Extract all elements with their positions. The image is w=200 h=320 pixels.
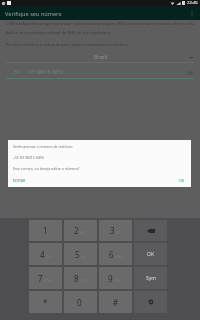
staticText: 55 [14,69,20,76]
staticText: EDITAR [13,178,26,183]
staticText: OK [179,178,185,183]
button[interactable]: Keyboard settings [134,291,167,313]
button[interactable]: 3 [99,220,132,241]
button[interactable]: Sym [134,267,167,289]
staticText: 1 [43,225,48,236]
staticText: +55 83 98415-6856 [13,155,44,160]
staticText: 7 [38,273,43,284]
button[interactable]: 8 [64,267,97,289]
staticText: MNO [115,255,123,259]
staticText: Verificaremos o número de telefone: [13,144,73,149]
staticText: 5 [75,249,80,260]
button[interactable]: 0 [64,291,97,313]
staticText: 9 [108,273,113,284]
button[interactable]: 5 [64,243,97,265]
button[interactable]: Backspace [134,220,167,241]
staticText: 0 [77,297,82,308]
staticText: 3 [110,225,115,236]
button[interactable]: Verifique seu número [0,6,200,20]
button[interactable]: * [29,291,62,313]
button[interactable]: 2 [64,220,97,241]
button[interactable]: 1 [29,220,62,241]
staticText: 4 [40,249,45,260]
staticText: O WhatsApp Messenger vai enviar uma únic… [6,21,194,36]
staticText: 83 98415-6856 [29,69,64,76]
staticText: PQRS [44,279,53,283]
button[interactable]: 9 [99,267,132,289]
staticText: Verifique seu número [5,10,62,17]
button[interactable]: OK [134,243,167,265]
staticText: OK [147,251,155,258]
button[interactable]: EDITAR [11,177,28,184]
button[interactable]: Brasil [6,53,194,62]
button[interactable]: 7 [29,267,62,289]
staticText: Por favor, confirme o código do país e d… [6,42,128,47]
button[interactable]: 4 [29,243,62,265]
staticText: Este correto, ou deseja editar o número? [13,166,80,171]
button[interactable]: OK [177,177,187,184]
staticText: Sym [146,275,156,282]
staticText: 6 [109,249,114,260]
button[interactable]: OK [187,70,194,76]
staticText: 22:45 [187,0,198,6]
other: Select country [189,55,194,60]
button[interactable]: # [99,291,132,313]
staticText: 2 [74,225,79,236]
staticText: ABC [80,231,87,235]
staticText: OK [187,70,194,76]
button[interactable]: More options [188,9,196,17]
staticText: # [113,297,119,308]
staticText: JKL [81,255,86,259]
staticText: WXYZ [114,279,123,283]
staticText: Brasil [94,54,107,61]
button[interactable]: 6 [99,243,132,265]
staticText: 8 [74,273,79,284]
staticText: * [43,297,48,308]
